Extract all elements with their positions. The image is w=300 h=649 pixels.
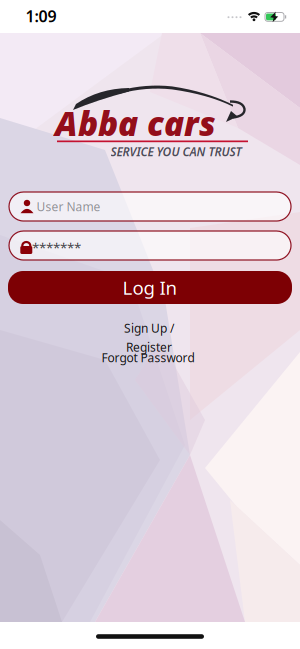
button[interactable]: Sign Up / bbox=[124, 320, 174, 336]
staticText: Forgot Password bbox=[101, 349, 194, 365]
button[interactable]: ******* bbox=[9, 231, 291, 260]
staticText: User Name bbox=[36, 198, 100, 214]
button[interactable]: Forgot Password bbox=[101, 349, 194, 365]
staticText: Log In bbox=[122, 275, 177, 300]
staticText: 1:09 bbox=[25, 5, 56, 27]
button[interactable]: Log In bbox=[8, 271, 292, 304]
staticText: Sign Up / bbox=[124, 320, 174, 336]
staticText: Register bbox=[126, 339, 172, 355]
staticText: Abba cars bbox=[55, 101, 216, 145]
button[interactable]: Register bbox=[126, 339, 172, 355]
button[interactable]: User Name bbox=[9, 192, 291, 221]
staticText: ******* bbox=[32, 239, 81, 256]
staticText: SERVICE YOU CAN TRUST bbox=[110, 143, 241, 159]
